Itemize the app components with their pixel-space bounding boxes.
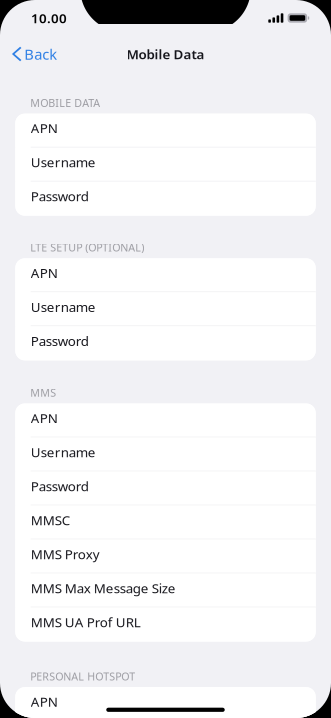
staticText: Password <box>31 477 89 495</box>
staticText: MOBILE DATA <box>30 96 100 110</box>
staticText: APN <box>31 409 58 427</box>
button[interactable]: MMSC <box>15 505 316 539</box>
staticText: 10.00 <box>31 9 67 27</box>
staticText: Back <box>24 44 57 64</box>
staticText: MMS Max Message Size <box>31 579 176 597</box>
button[interactable]: MMS UA Prof URL <box>15 607 316 641</box>
staticText: Username <box>31 443 96 461</box>
button[interactable]: APN <box>15 114 316 148</box>
button[interactable]: Password <box>15 182 316 216</box>
staticText: LTE SETUP (OPTIONAL) <box>30 240 144 255</box>
staticText: Username <box>31 153 96 171</box>
button[interactable]: Username <box>15 437 316 471</box>
staticText: MMS <box>30 385 56 400</box>
button[interactable]: Back <box>0 37 57 71</box>
staticText: Username <box>31 298 96 316</box>
staticText: APN <box>31 119 58 137</box>
staticText: Password <box>31 187 89 205</box>
button[interactable]: Username <box>15 292 316 326</box>
button[interactable]: APN <box>15 403 316 437</box>
button[interactable]: APN <box>15 258 316 292</box>
staticText: PERSONAL HOTSPOT <box>30 669 135 683</box>
staticText: MMSC <box>31 511 70 529</box>
staticText: MMS Proxy <box>31 545 100 563</box>
button[interactable]: MMS Max Message Size <box>15 573 316 607</box>
staticText: APN <box>31 264 58 282</box>
staticText: Password <box>31 332 89 350</box>
staticText: MMS UA Prof URL <box>31 613 141 631</box>
button[interactable]: Username <box>15 148 316 182</box>
button[interactable]: MMS Proxy <box>15 539 316 573</box>
button[interactable]: Password <box>15 326 316 360</box>
button[interactable]: APN <box>15 687 316 718</box>
staticText: APN <box>31 693 58 710</box>
staticText: Mobile Data <box>126 45 204 63</box>
button[interactable]: Password <box>15 471 316 505</box>
